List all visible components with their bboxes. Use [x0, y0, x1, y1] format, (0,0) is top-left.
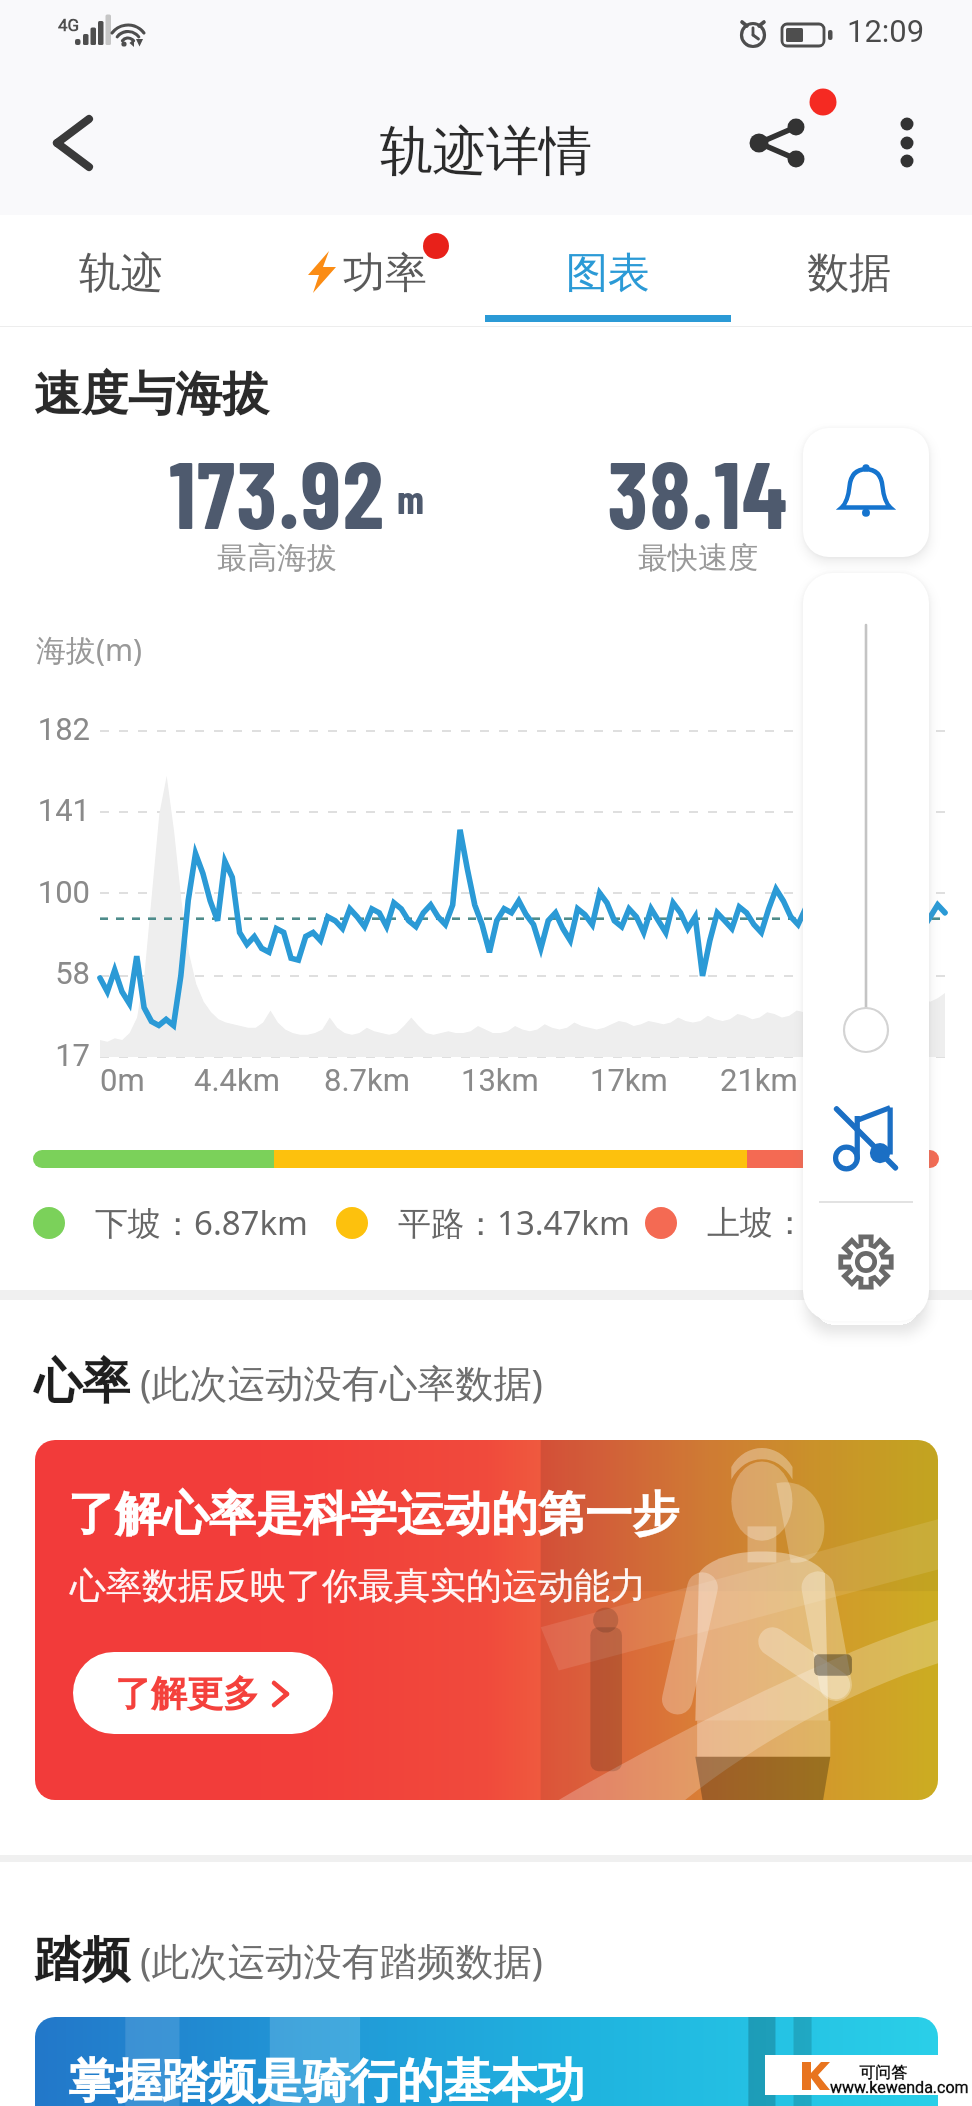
staticText: 4.4km — [194, 1062, 280, 1098]
staticText: 下坡：6.87km — [95, 1200, 308, 1245]
staticText: 38.14 — [498, 436, 898, 548]
button[interactable]: Settings — [803, 1203, 929, 1321]
staticText: 海拔(m) — [36, 629, 143, 670]
staticText: 58 — [20, 955, 90, 991]
staticText: 17 — [20, 1037, 90, 1073]
button[interactable] — [740, 216, 950, 326]
staticText: 了解更多 — [115, 1671, 259, 1716]
staticText: 0m — [100, 1062, 145, 1098]
staticText: 平路：13.47km — [398, 1200, 630, 1245]
staticText: (此次运动没有踏频数据) — [140, 1934, 543, 1986]
staticText: 数据 — [807, 247, 891, 300]
staticText: 轨迹 — [79, 247, 163, 300]
button[interactable] — [22, 216, 222, 326]
staticText: 功率 — [343, 247, 427, 300]
staticText: 图表 — [566, 247, 650, 300]
button[interactable]: 了解更多 — [73, 1652, 333, 1734]
staticText: 速度与海拔 — [34, 365, 269, 424]
button[interactable]: Ring mode — [803, 428, 929, 557]
staticText: 182 — [20, 711, 90, 747]
staticText: 上坡： — [707, 1202, 806, 1244]
button[interactable]: Share — [716, 82, 836, 202]
staticText: 100 — [20, 874, 90, 910]
button[interactable]: Back — [22, 94, 122, 194]
staticText: www.kewenda.com — [830, 2078, 969, 2097]
button[interactable]: More options — [857, 92, 957, 192]
staticText: 8.7km — [324, 1062, 410, 1098]
staticText: 173.92 — [77, 436, 477, 548]
button[interactable]: 了解心率是科学运动的第一步 — [35, 1440, 938, 1800]
staticText: 踏频 — [34, 1930, 130, 1990]
staticText: 掌握踏频是骑行的基本功 — [68, 2052, 585, 2106]
staticText: 心率 — [34, 1352, 130, 1412]
button[interactable]: 掌握踏频是骑行的基本功 — [35, 2017, 938, 2106]
staticText: 141 — [20, 792, 90, 828]
button[interactable] — [270, 216, 485, 326]
staticText: 可问答 — [859, 2063, 907, 2083]
staticText: (此次运动没有心率数据) — [140, 1356, 543, 1408]
staticText: 17km — [590, 1062, 668, 1098]
staticText: m — [397, 474, 424, 522]
staticText: 12:09 — [847, 13, 925, 49]
staticText: 轨迹详情 — [0, 118, 972, 185]
staticText: 心率数据反映了你最真实的运动能力 — [70, 1563, 646, 1608]
button[interactable] — [500, 216, 715, 326]
button[interactable]: Mute — [803, 1073, 929, 1201]
staticText: 最快速度 — [498, 539, 898, 577]
staticText: 4G — [58, 15, 80, 35]
staticText: 最高海拔 — [77, 539, 477, 577]
staticText: 13km — [461, 1062, 539, 1098]
staticText: 了解心率是科学运动的第一步 — [68, 1485, 679, 1544]
staticText: 21km — [720, 1062, 798, 1098]
